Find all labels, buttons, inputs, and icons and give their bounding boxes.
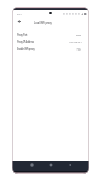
- staticText: Proxy Port: [17, 33, 28, 36]
- staticText: 8080: [76, 33, 82, 36]
- button[interactable]: Enable WiFi proxy: [12, 45, 89, 52]
- button[interactable]: Recents: [31, 161, 33, 169]
- staticText: Local WiFi proxy: [34, 21, 52, 25]
- button[interactable]: Proxy Port: [12, 31, 89, 38]
- staticText: Proxy IP Address: [17, 40, 34, 43]
- button[interactable]: Back: [69, 161, 71, 169]
- staticText: 192.168.43.1: [69, 40, 82, 43]
- button[interactable]: Proxy IP Address: [12, 38, 89, 45]
- button[interactable]: Back: [16, 18, 22, 24]
- staticText: 9:41: [17, 12, 22, 15]
- staticText: Enable WiFi proxy: [17, 47, 35, 50]
- button[interactable]: Home: [50, 161, 52, 169]
